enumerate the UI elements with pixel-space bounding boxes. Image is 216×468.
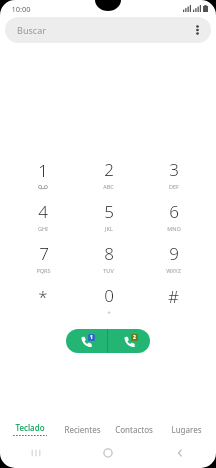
- button[interactable]: 9: [141, 237, 206, 279]
- staticText: #: [168, 285, 179, 308]
- staticText: +: [107, 309, 111, 316]
- button[interactable]: Home: [72, 441, 144, 465]
- staticText: 7: [39, 242, 49, 265]
- staticText: DEF: [169, 183, 179, 190]
- button[interactable]: 2: [76, 153, 141, 195]
- staticText: Recientes: [64, 424, 101, 435]
- staticText: 5: [104, 200, 114, 223]
- button[interactable]: More options: [188, 21, 206, 39]
- staticText: Buscar: [17, 24, 46, 36]
- staticText: 8: [104, 242, 114, 265]
- button[interactable]: 7: [10, 237, 76, 279]
- staticText: *: [38, 285, 48, 308]
- staticText: ABC: [103, 183, 114, 190]
- button[interactable]: 0: [76, 279, 141, 321]
- button[interactable]: Lugares: [160, 417, 212, 441]
- button[interactable]: Recent apps: [0, 441, 72, 465]
- staticText: MNO: [167, 225, 181, 232]
- staticText: 4: [38, 200, 48, 223]
- button[interactable]: Back: [144, 441, 216, 465]
- button[interactable]: Call with SIM 1: [66, 329, 107, 353]
- button[interactable]: 6: [141, 195, 206, 237]
- button[interactable]: Recientes: [56, 417, 108, 441]
- staticText: GHI: [38, 225, 48, 232]
- staticText: 2: [104, 158, 114, 181]
- staticText: 9: [169, 242, 179, 265]
- button[interactable]: Call with SIM 2: [108, 329, 150, 353]
- button[interactable]: 3: [141, 153, 206, 195]
- button[interactable]: *: [10, 279, 76, 321]
- staticText: 6: [169, 200, 179, 223]
- staticText: 0: [104, 284, 114, 307]
- staticText: 1: [90, 334, 93, 341]
- staticText: Teclado: [15, 422, 45, 433]
- button[interactable]: 4: [10, 195, 76, 237]
- button[interactable]: Teclado: [4, 417, 56, 441]
- staticText: 10:00: [11, 4, 31, 14]
- staticText: Contactos: [115, 424, 153, 435]
- staticText: 2: [133, 334, 136, 341]
- staticText: 1: [38, 159, 48, 182]
- staticText: JKL: [105, 225, 113, 232]
- button[interactable]: 8: [76, 237, 141, 279]
- staticText: Lugares: [171, 424, 202, 435]
- button[interactable]: Buscar: [5, 17, 211, 43]
- button[interactable]: #: [141, 279, 206, 321]
- staticText: PQRS: [36, 267, 51, 274]
- button[interactable]: Contactos: [108, 417, 160, 441]
- staticText: TUV: [103, 267, 114, 274]
- button[interactable]: 5: [76, 195, 141, 237]
- staticText: WXYZ: [166, 267, 181, 274]
- staticText: 3: [169, 158, 179, 181]
- button[interactable]: 1: [10, 153, 76, 195]
